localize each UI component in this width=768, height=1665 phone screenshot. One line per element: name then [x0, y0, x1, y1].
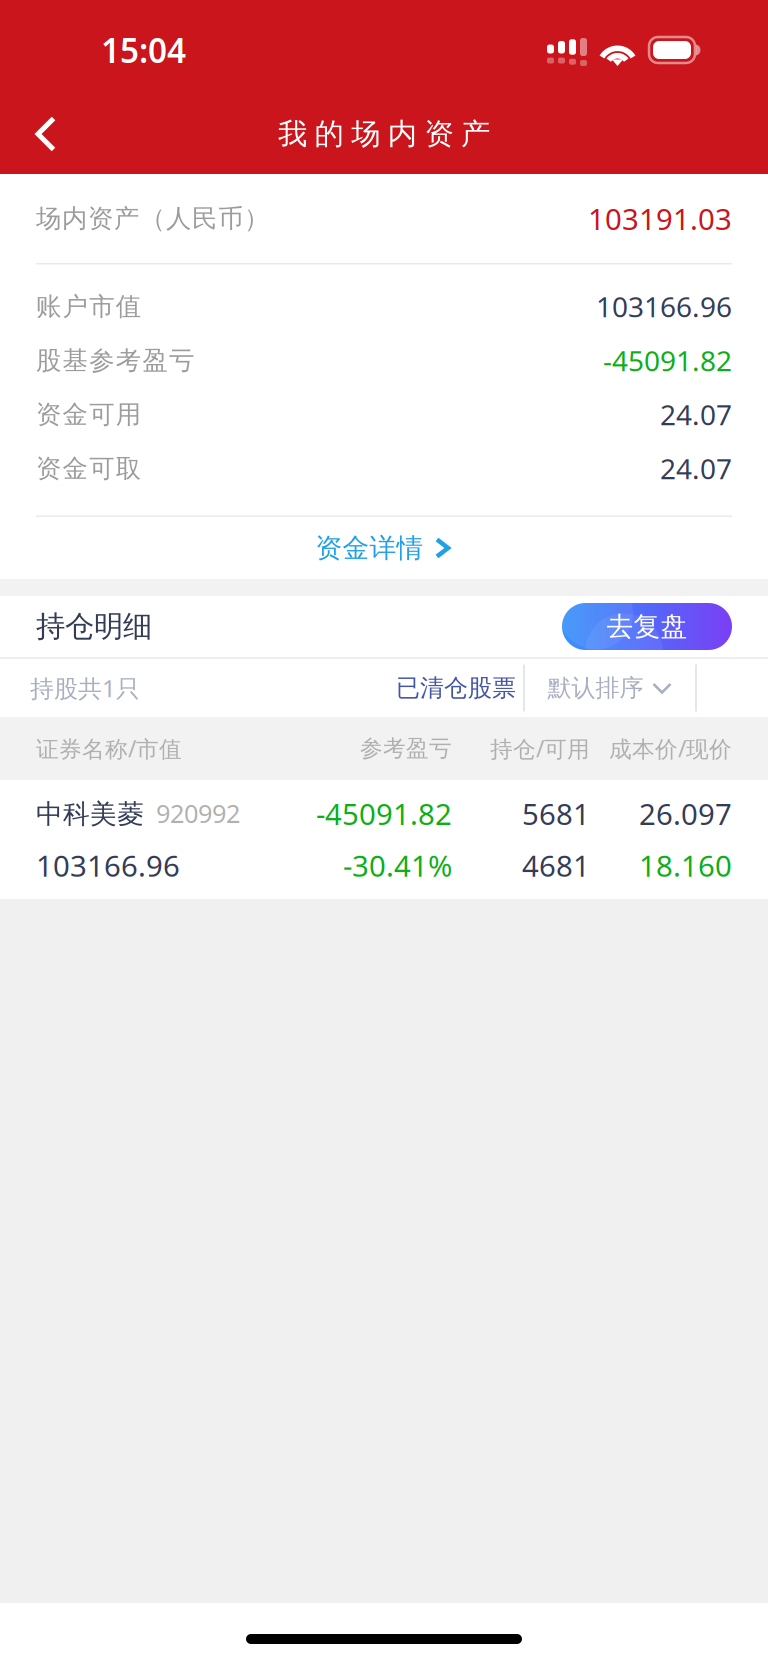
staticText: 资金详情 [315, 532, 423, 564]
staticText: 24.07 [660, 396, 732, 433]
button[interactable]: 已清仓股票 [389, 659, 523, 717]
staticText: 股基参考盈亏 [36, 345, 194, 376]
staticText: 资金可取 [36, 453, 141, 484]
staticText: 持股共1只 [30, 672, 140, 704]
staticText: -45091.82 [316, 794, 452, 833]
staticText: 18.160 [639, 846, 732, 885]
staticText: 成本价/现价 [609, 733, 732, 763]
staticText: 4681 [522, 846, 590, 885]
staticText: 证券名称/市值 [36, 733, 182, 763]
staticText: 持仓/可用 [490, 733, 590, 763]
staticText: 账户市值 [36, 291, 141, 322]
staticText: 26.097 [639, 794, 732, 833]
staticText: 默认排序 [547, 673, 643, 703]
staticText: 中科美菱 [36, 798, 144, 831]
button[interactable]: 返回 [0, 94, 92, 174]
staticText: 持仓明细 [36, 608, 152, 644]
staticText: 场内资产（人民币） [36, 203, 269, 234]
staticText: 15:04 [101, 28, 186, 72]
button[interactable]: 资金详情 [0, 517, 768, 579]
staticText: 103166.96 [596, 288, 732, 325]
staticText: 103166.96 [36, 846, 180, 885]
staticText: 103191.03 [588, 199, 732, 238]
staticText: -30.41% [343, 846, 452, 885]
staticText: 24.07 [660, 450, 732, 487]
button[interactable]: 中科美菱 [0, 780, 768, 899]
staticText: 资金可用 [36, 399, 141, 430]
staticText: 已清仓股票 [396, 673, 516, 703]
staticText: 920992 [156, 796, 240, 830]
staticText: 5681 [522, 794, 590, 833]
staticText: 参考盈亏 [360, 735, 452, 762]
staticText: 我的场内资产 [278, 116, 490, 152]
button[interactable]: 去复盘 [562, 603, 732, 650]
staticText: -45091.82 [603, 342, 732, 379]
staticText: 去复盘 [606, 610, 687, 643]
button[interactable]: 默认排序 [525, 659, 695, 717]
